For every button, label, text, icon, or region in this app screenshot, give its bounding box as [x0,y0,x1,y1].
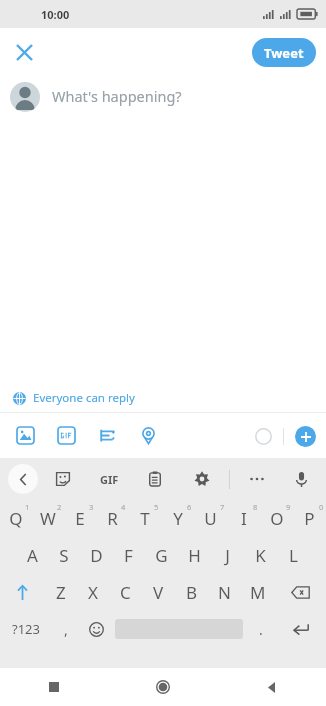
staticText: . [259,620,263,639]
button[interactable]: A [16,537,48,574]
staticText: 4 [121,502,126,512]
staticText: H [188,544,201,567]
button[interactable]: ?123 [0,611,51,647]
button[interactable]: M [241,574,274,611]
staticText: , [64,620,68,639]
button[interactable]: Enter [276,611,326,647]
staticText: Tweet [264,44,304,62]
staticText: R [107,507,118,530]
staticText: V [153,581,164,604]
button[interactable]: T [128,500,161,537]
button[interactable]: Recent apps [0,668,108,706]
staticText: P [304,507,315,530]
staticText: M [250,581,266,604]
staticText: G [155,544,168,567]
button[interactable]: Settings [186,463,218,495]
button[interactable]: H [178,537,211,574]
button[interactable]: B [175,574,208,611]
staticText: N [218,581,231,604]
staticText: S [59,544,69,567]
button[interactable]: D [80,537,112,574]
staticText: 10:00 [41,7,70,22]
staticText: 2 [57,502,62,512]
button[interactable]: Z [45,574,77,611]
button[interactable]: Profile [10,82,40,112]
staticText: 8 [253,502,258,512]
button[interactable]: V [142,574,175,611]
button[interactable]: Location [128,415,169,456]
button[interactable]: GIF [92,462,126,496]
button[interactable]: Everyone can reply [0,384,326,412]
staticText: GIF [100,472,119,487]
button[interactable]: Clipboard [139,463,171,495]
button[interactable]: P [293,500,326,537]
staticText: ?123 [12,620,40,638]
staticText: A [27,544,38,567]
button[interactable]: F [112,537,145,574]
button[interactable]: Add photo [5,415,46,456]
staticText: C [120,581,131,604]
button[interactable]: Delete [274,574,326,611]
staticText: K [255,544,266,567]
button[interactable]: Shift [0,574,45,611]
button[interactable]: Add GIF [46,415,87,456]
button[interactable]: I [227,500,260,537]
staticText: W [40,507,56,530]
button[interactable]: Character count [247,420,279,452]
staticText: What's happening? [52,86,182,106]
staticText: E [75,507,85,530]
button[interactable]: Emoji [80,611,113,647]
staticText: Everyone can reply [33,390,135,406]
button[interactable]: U [194,500,227,537]
button[interactable]: E [64,500,96,537]
staticText: F [124,544,133,567]
staticText: Z [56,581,66,604]
staticText: B [186,581,198,604]
button[interactable]: Stickers [47,463,79,495]
button[interactable]: . [245,611,276,647]
button[interactable]: Tweet [252,38,316,67]
button[interactable]: Poll [87,415,128,456]
staticText: 0 [319,502,324,512]
staticText: O [270,507,284,530]
staticText: X [88,581,98,604]
staticText: 5 [154,502,159,512]
button[interactable]: N [208,574,241,611]
button[interactable]: Y [161,500,194,537]
staticText: T [140,507,150,530]
button[interactable]: S [48,537,80,574]
button[interactable]: Home [108,668,217,706]
staticText: J [225,544,230,567]
button[interactable]: O [260,500,293,537]
staticText: Q [9,507,23,530]
staticText: 9 [286,502,291,512]
button[interactable]: K [244,537,277,574]
button[interactable]: Q [0,500,32,537]
button[interactable]: More [242,464,272,494]
staticText: 7 [220,502,225,512]
button[interactable]: , [51,611,80,647]
staticText: I [241,507,247,530]
staticText: 1 [25,502,30,512]
button[interactable]: Back [8,464,38,494]
staticText: U [204,507,217,530]
button[interactable]: W [32,500,64,537]
button[interactable]: J [211,537,244,574]
staticText: D [90,544,103,567]
button[interactable]: X [77,574,109,611]
button[interactable]: Add tweet [295,426,316,447]
button[interactable]: Close [5,33,43,71]
button[interactable]: C [109,574,142,611]
button[interactable]: Back [217,668,326,706]
staticText: 6 [187,502,192,512]
staticText: L [289,544,298,567]
button[interactable]: Voice input [285,463,317,495]
button[interactable]: G [145,537,178,574]
staticText: Y [173,507,183,530]
button[interactable]: R [96,500,128,537]
staticText: 3 [89,502,94,512]
button[interactable]: L [277,537,310,574]
